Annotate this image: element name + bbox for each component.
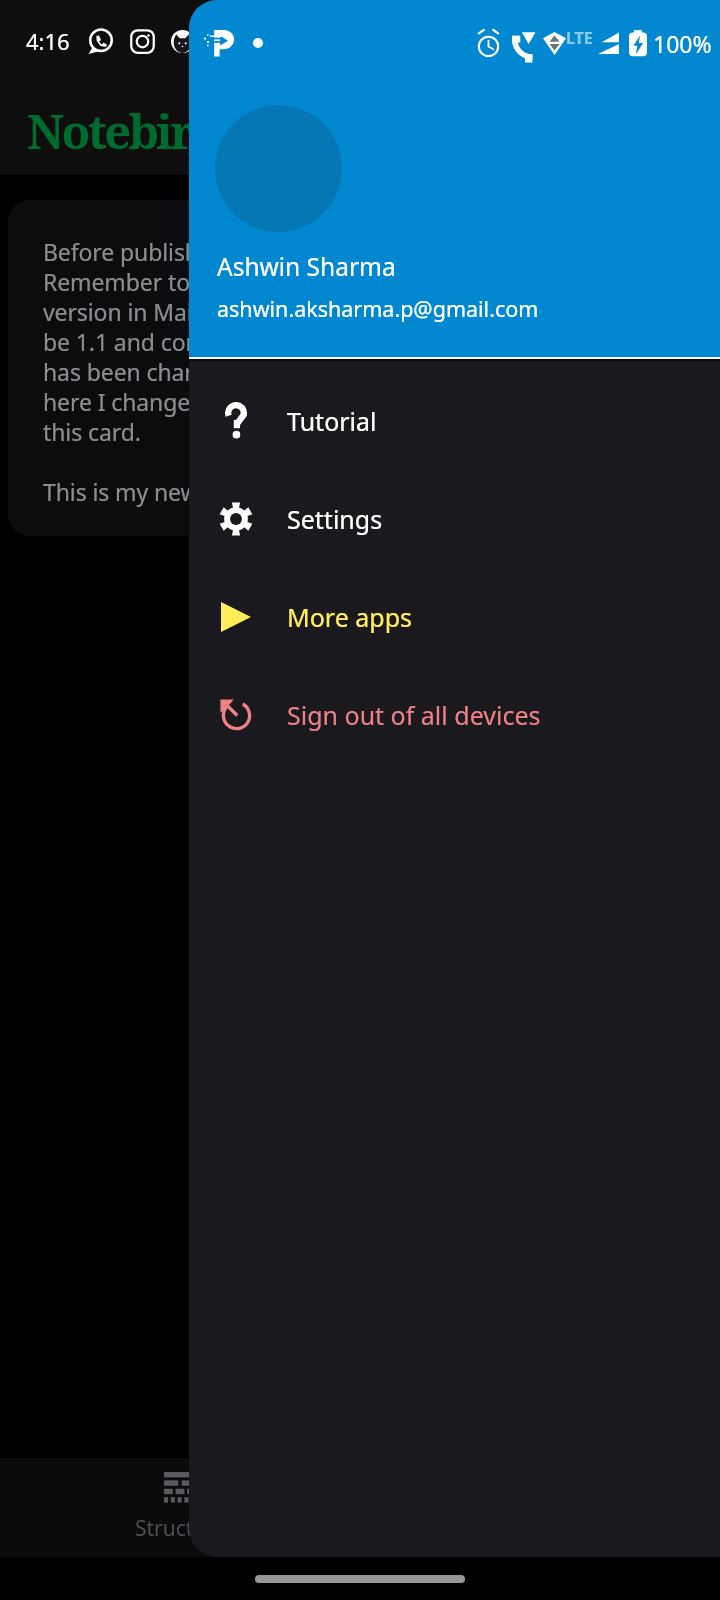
staticText: Settings: [287, 502, 383, 536]
button[interactable]: Close navigation drawer: [0, 0, 720, 1600]
staticText: Before publishing this update, Remember …: [43, 236, 366, 507]
staticText: ashwin.aksharma.p@gmail.com: [217, 294, 539, 323]
staticText: More apps: [287, 600, 412, 634]
button[interactable]: Ashwin Sharma: [189, 250, 720, 357]
staticText: 100%: [653, 28, 712, 59]
staticText: Tutorial: [287, 404, 377, 438]
staticText: Ashwin Sharma: [217, 250, 396, 283]
button[interactable]: Tutorial: [189, 372, 720, 470]
staticText: 4:16: [26, 26, 70, 56]
button[interactable]: Settings: [189, 470, 720, 568]
button[interactable]: Structure: [104, 1458, 258, 1557]
button[interactable]: Sign out of all devices: [189, 666, 720, 764]
staticText: Notebird: [27, 99, 221, 163]
staticText: Structure: [135, 1514, 227, 1543]
button[interactable]: Profile photo: [215, 105, 342, 232]
staticText: Sign out of all devices: [287, 698, 541, 732]
staticText: LTE: [566, 27, 593, 49]
button[interactable]: More apps: [189, 568, 720, 666]
